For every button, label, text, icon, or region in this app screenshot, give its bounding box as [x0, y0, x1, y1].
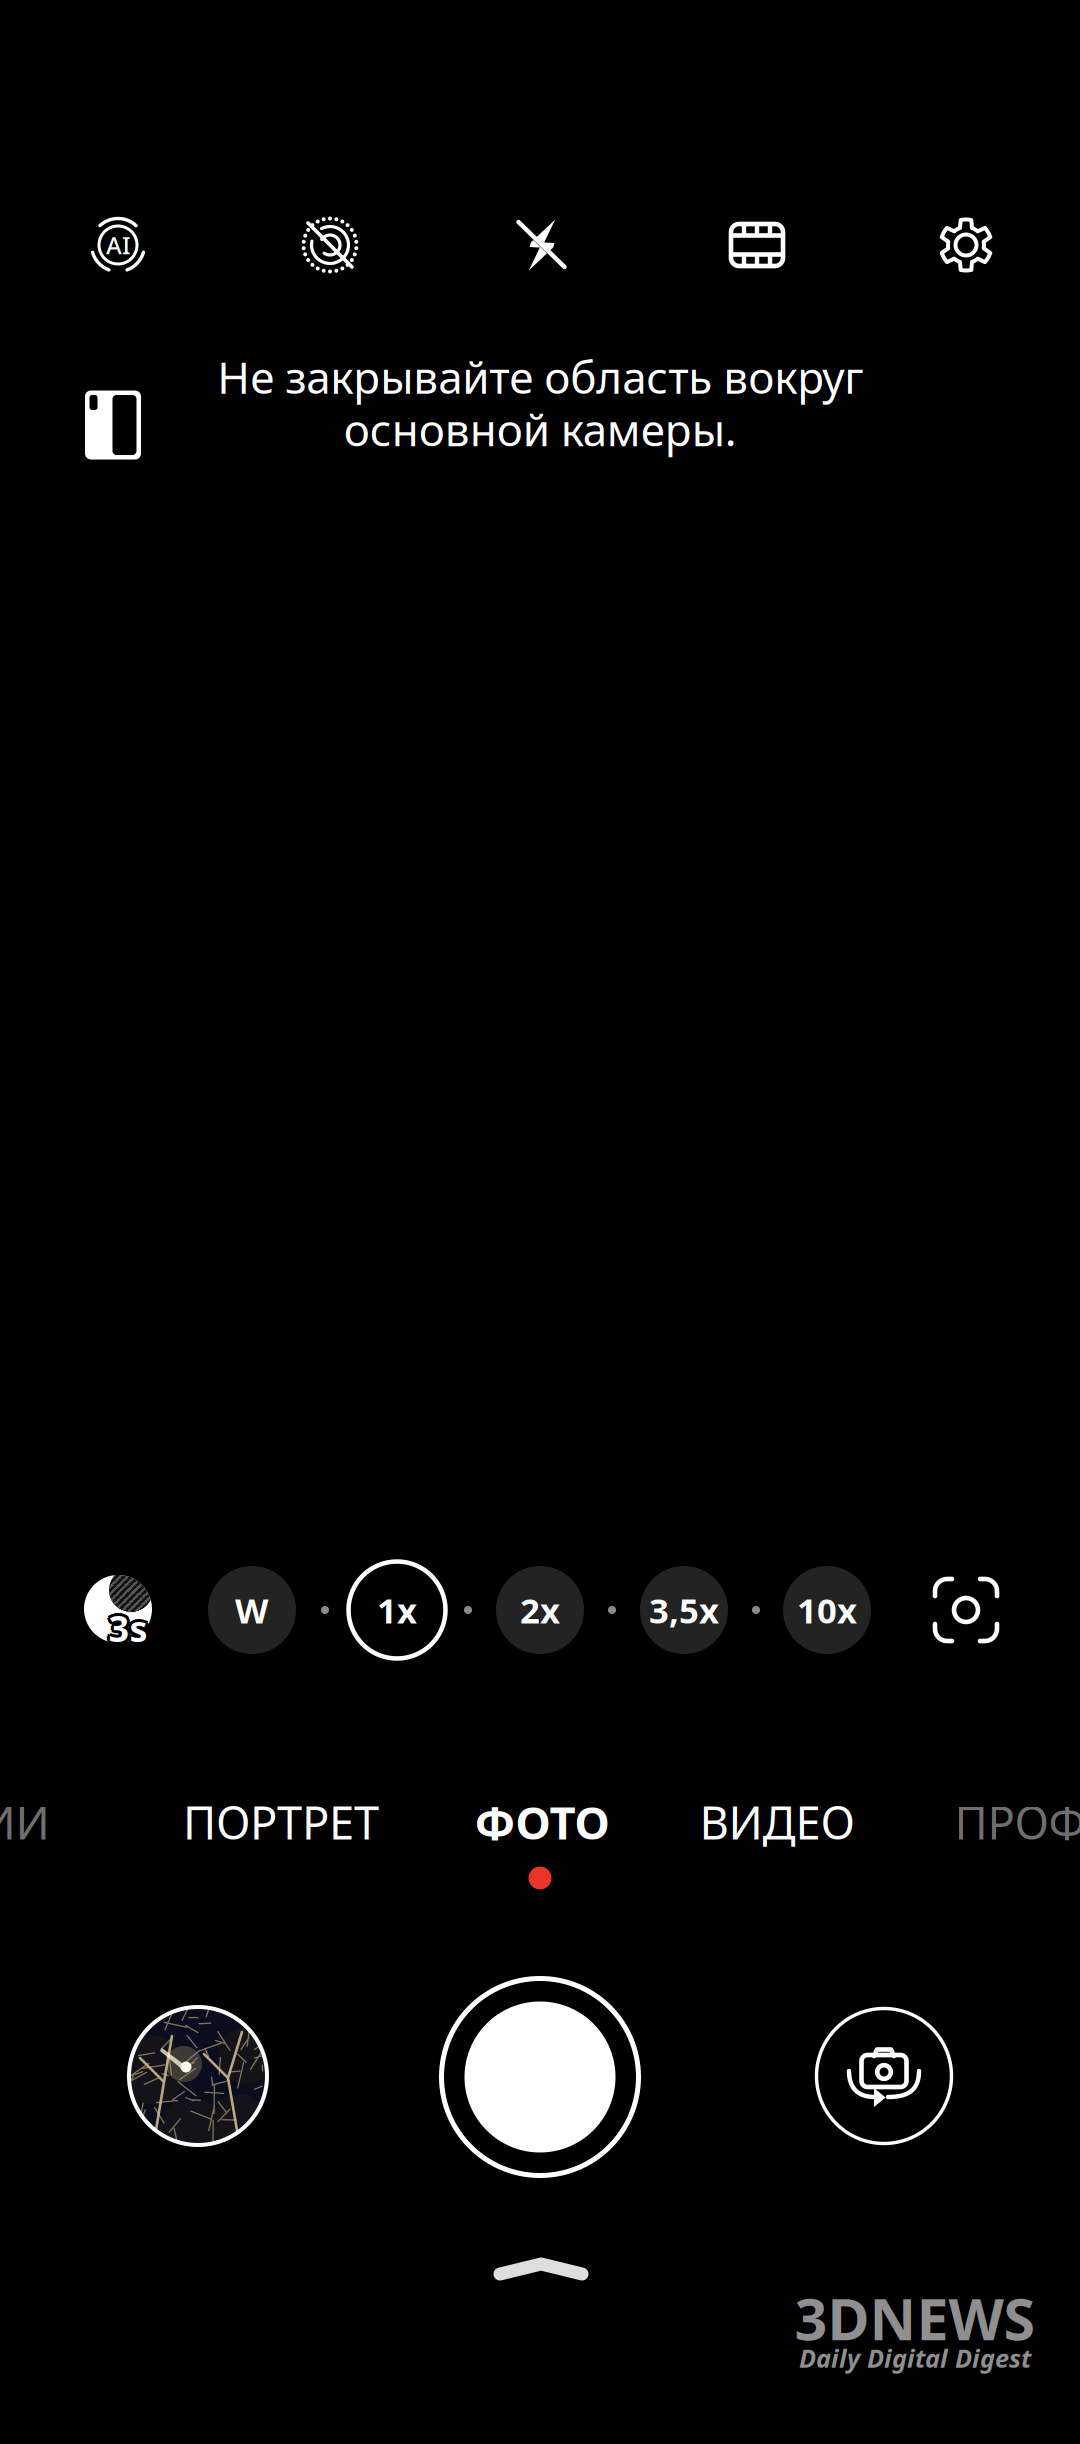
button[interactable]: Filters — [648, 195, 860, 295]
staticText: 10x — [797, 1587, 857, 1633]
button[interactable]: 3,5x — [640, 1566, 728, 1654]
button[interactable]: Macro mode off — [224, 195, 436, 295]
button[interactable]: Switch camera — [816, 2008, 951, 2143]
staticText: СЕРИИ — [0, 1792, 49, 1852]
staticText: W — [235, 1587, 269, 1633]
staticText: Не закрывайте область вокруг основной ка… — [217, 348, 863, 458]
button[interactable]: Show more controls — [481, 2239, 601, 2299]
staticText: ПОРТРЕТ — [183, 1792, 379, 1852]
button[interactable]: Night mode, 3 seconds — [80, 1571, 156, 1647]
button[interactable]: ВИДЕО — [659, 1787, 894, 1857]
button[interactable]: 10x — [783, 1566, 871, 1654]
button[interactable]: ПОРТРЕТ — [163, 1787, 398, 1857]
staticText: 3s — [108, 1607, 147, 1655]
button[interactable]: AI scene detection — [12, 195, 224, 295]
staticText: 3s — [108, 1604, 147, 1652]
staticText: 3,5x — [649, 1587, 719, 1633]
staticText: 3s — [111, 1606, 150, 1654]
button[interactable]: Flash off — [436, 195, 648, 295]
button[interactable]: 2x — [496, 1566, 584, 1654]
button[interactable]: СЕРИИ — [0, 1787, 92, 1857]
staticText: AI — [106, 229, 130, 261]
button[interactable]: ПРОФИ — [919, 1787, 1080, 1857]
button[interactable]: Photo gallery — [129, 2007, 267, 2145]
button[interactable]: ФОТО — [424, 1787, 659, 1857]
staticText: 2x — [520, 1587, 560, 1633]
button[interactable]: Camera settings — [860, 195, 1072, 295]
staticText: 3s — [105, 1604, 144, 1652]
staticText: 1x — [377, 1587, 417, 1633]
staticText: Daily Digital Digest — [799, 2341, 1031, 2375]
staticText: 3s — [111, 1602, 150, 1650]
staticText: 3s — [106, 1606, 145, 1654]
staticText: ФОТО — [474, 1792, 609, 1852]
button[interactable]: Scan — [932, 1576, 1000, 1644]
staticText: ПРОФИ — [954, 1792, 1080, 1852]
staticText: 3DNEWS — [794, 2280, 1035, 2356]
staticText: 3s — [111, 1604, 150, 1652]
button[interactable]: W — [208, 1566, 296, 1654]
staticText: 3s — [108, 1601, 147, 1649]
staticText: ВИДЕО — [699, 1792, 854, 1852]
button[interactable]: 1x — [348, 1561, 445, 1658]
button[interactable]: Shutter — [441, 1978, 638, 2175]
staticText: 3s — [106, 1602, 145, 1650]
